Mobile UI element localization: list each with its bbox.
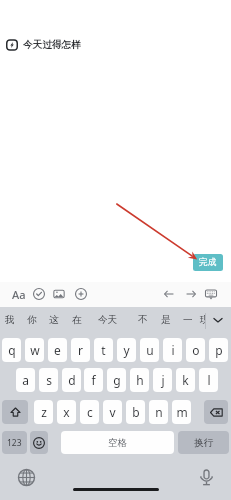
button[interactable]: s xyxy=(39,368,58,392)
button[interactable]: n xyxy=(149,400,168,424)
staticText: m xyxy=(176,404,188,420)
staticText: 今天 xyxy=(98,314,118,326)
button[interactable]: 空格 xyxy=(61,431,174,454)
button[interactable]: z xyxy=(34,400,53,424)
button[interactable]: g xyxy=(107,368,126,392)
staticText: e xyxy=(54,342,61,358)
button[interactable]: More candidates xyxy=(211,313,225,327)
staticText: d xyxy=(68,372,76,388)
button[interactable]: Undo xyxy=(158,283,180,305)
button[interactable]: o xyxy=(186,338,205,362)
button[interactable]: Insert image xyxy=(48,283,70,305)
staticText: 今天过得怎样 xyxy=(23,39,81,51)
staticText: l xyxy=(207,372,211,388)
staticText: g xyxy=(113,372,121,388)
staticText: v xyxy=(109,404,116,420)
staticText: Aa xyxy=(12,287,26,302)
button[interactable]: w xyxy=(25,338,44,362)
button[interactable]: Shift xyxy=(2,400,28,424)
staticText: 是 xyxy=(161,314,171,326)
staticText: 不 xyxy=(138,314,148,326)
button[interactable]: 不 xyxy=(136,313,149,327)
button[interactable]: 现 xyxy=(198,313,205,327)
button[interactable]: k xyxy=(176,368,195,392)
staticText: z xyxy=(41,404,47,420)
button[interactable]: 你 xyxy=(25,313,38,327)
button[interactable]: 在 xyxy=(70,313,83,327)
button[interactable]: 123 xyxy=(2,431,27,454)
button[interactable]: u xyxy=(140,338,159,362)
staticText: 在 xyxy=(72,314,82,326)
staticText: c xyxy=(87,404,93,420)
staticText: t xyxy=(101,342,106,358)
button[interactable]: f xyxy=(84,368,103,392)
staticText: 现 xyxy=(200,314,205,326)
staticText: f xyxy=(91,372,96,388)
button[interactable]: 完成 xyxy=(193,254,223,271)
button[interactable]: Text format xyxy=(8,283,30,305)
button[interactable]: Checklist xyxy=(28,283,50,305)
button[interactable]: 今天 xyxy=(97,313,119,327)
button[interactable]: Switch language xyxy=(16,467,36,487)
staticText: x xyxy=(63,404,70,420)
button[interactable]: Backspace xyxy=(204,400,228,424)
staticText: w xyxy=(30,342,40,358)
staticText: b xyxy=(132,404,140,420)
button[interactable]: x xyxy=(57,400,76,424)
button[interactable]: 今天过得怎样 xyxy=(6,39,81,51)
button[interactable]: q xyxy=(2,338,21,362)
button[interactable]: Redo xyxy=(180,283,202,305)
staticText: 完成 xyxy=(199,257,217,268)
button[interactable]: h xyxy=(130,368,149,392)
button[interactable]: 是 xyxy=(159,313,172,327)
staticText: 123 xyxy=(7,437,22,449)
staticText: n xyxy=(155,404,163,420)
staticText: s xyxy=(46,372,52,388)
button[interactable]: 换行 xyxy=(178,431,229,454)
staticText: 我 xyxy=(5,314,15,326)
button[interactable]: e xyxy=(48,338,67,362)
staticText: o xyxy=(192,342,200,358)
staticText: p xyxy=(215,342,223,358)
staticText: y xyxy=(123,342,130,358)
staticText: q xyxy=(8,342,16,358)
button[interactable]: v xyxy=(103,400,122,424)
button[interactable]: Voice input xyxy=(196,467,216,487)
staticText: 这 xyxy=(49,314,59,326)
button[interactable]: 一 xyxy=(181,313,194,327)
button[interactable]: i xyxy=(163,338,182,362)
button[interactable]: m xyxy=(172,400,191,424)
button[interactable]: Add xyxy=(70,283,92,305)
button[interactable]: r xyxy=(71,338,90,362)
button[interactable]: p xyxy=(209,338,228,362)
staticText: i xyxy=(171,342,175,358)
staticText: 换行 xyxy=(194,437,213,449)
button[interactable]: l xyxy=(199,368,218,392)
staticText: j xyxy=(161,372,165,388)
button[interactable]: y xyxy=(117,338,136,362)
button[interactable]: t xyxy=(94,338,113,362)
staticText: 你 xyxy=(27,314,37,326)
staticText: h xyxy=(136,372,144,388)
button[interactable]: b xyxy=(126,400,145,424)
button[interactable]: 我 xyxy=(3,313,16,327)
button[interactable]: Emoji xyxy=(30,431,48,454)
staticText: u xyxy=(146,342,154,358)
staticText: r xyxy=(78,342,83,358)
staticText: k xyxy=(182,372,189,388)
button[interactable]: c xyxy=(80,400,99,424)
staticText: a xyxy=(22,372,29,388)
button[interactable]: Hide keyboard xyxy=(200,283,222,305)
button[interactable]: a xyxy=(16,368,35,392)
button[interactable]: d xyxy=(62,368,81,392)
button[interactable]: j xyxy=(153,368,172,392)
staticText: 空格 xyxy=(108,437,127,449)
button[interactable]: 这 xyxy=(47,313,60,327)
staticText: 一 xyxy=(183,314,193,326)
